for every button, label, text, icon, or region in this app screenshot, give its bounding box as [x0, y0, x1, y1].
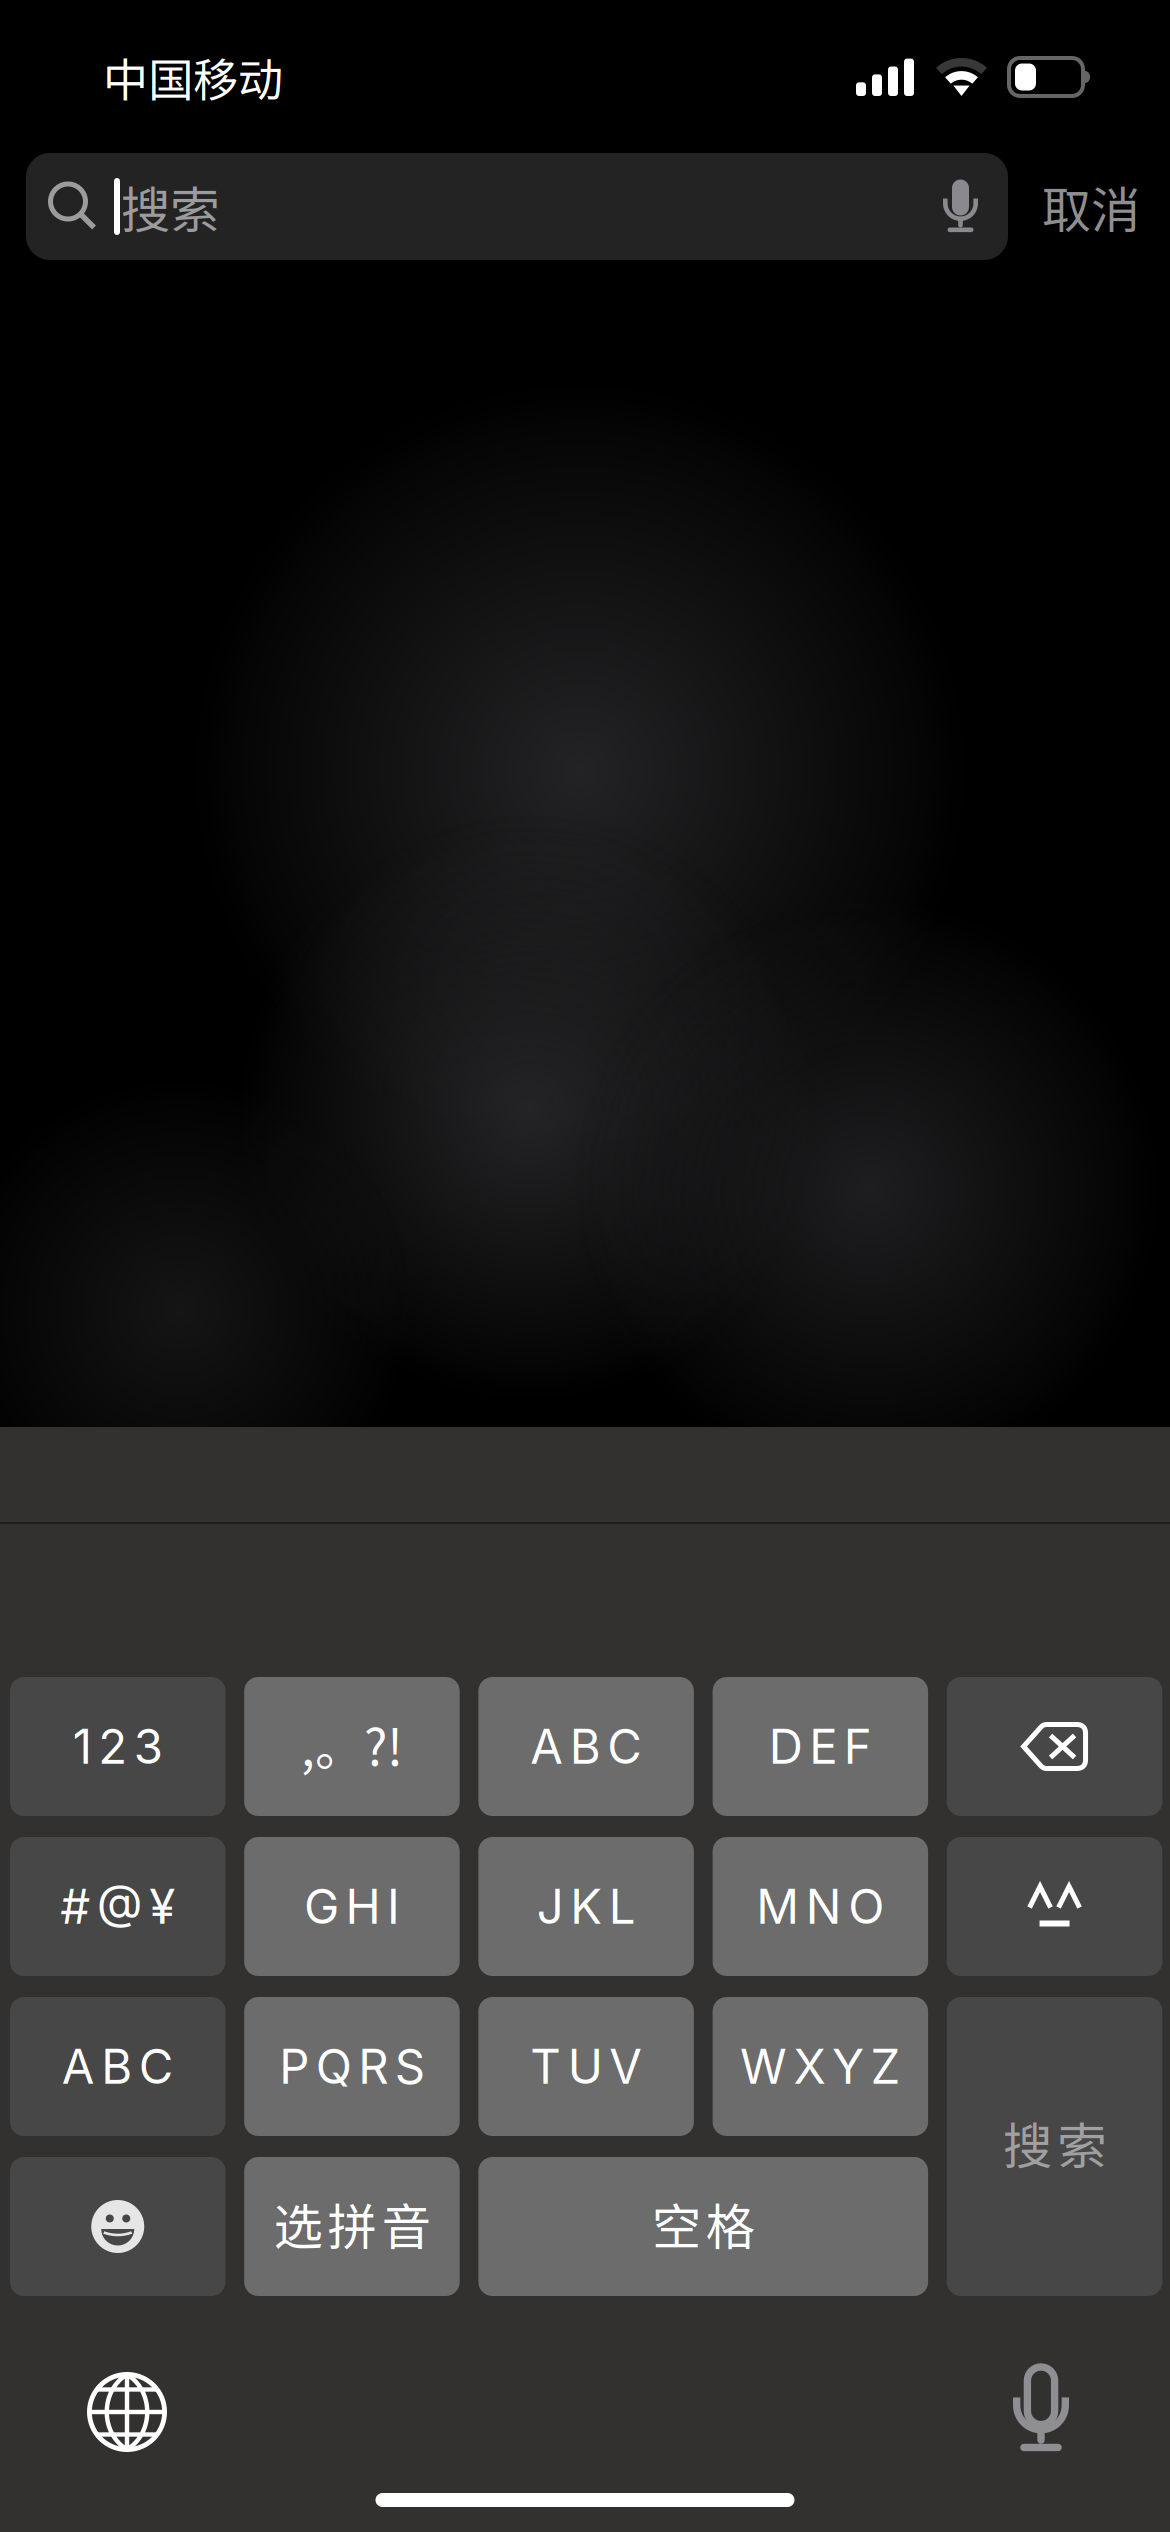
- button[interactable]: Dictation: [1013, 2367, 1069, 2453]
- button[interactable]: MNO: [713, 1837, 928, 1976]
- staticText: GHI: [304, 1878, 400, 1935]
- button[interactable]: 选拼音: [244, 2157, 460, 2296]
- staticText: 搜索: [121, 171, 219, 242]
- staticText: TUV: [530, 2038, 642, 2095]
- staticText: ABC: [530, 1718, 642, 1775]
- staticText: 空格: [652, 2188, 755, 2259]
- button[interactable]: JKL: [478, 1837, 694, 1976]
- staticText: #@¥: [60, 1878, 175, 1935]
- button[interactable]: 123: [10, 1677, 225, 1816]
- button[interactable]: WXYZ: [713, 1997, 928, 2136]
- button[interactable]: PQRS: [244, 1997, 460, 2136]
- staticText: 取消: [1042, 171, 1140, 242]
- button[interactable]: TUV: [478, 1997, 694, 2136]
- staticText: DEF: [769, 1718, 872, 1775]
- staticText: ABC: [62, 2038, 174, 2095]
- staticText: WXYZ: [740, 2038, 901, 2095]
- button[interactable]: 搜索: [26, 153, 1008, 260]
- staticText: 选拼音: [273, 2188, 430, 2259]
- staticText: JKL: [537, 1878, 636, 1935]
- button[interactable]: Emoji: [10, 2157, 225, 2296]
- staticText: ,。?!: [301, 1709, 403, 1780]
- button[interactable]: ABC: [10, 1997, 225, 2136]
- button[interactable]: ABC: [478, 1677, 694, 1816]
- button[interactable]: 搜索: [947, 1997, 1162, 2296]
- staticText: MNO: [756, 1878, 884, 1935]
- staticText: 搜索: [1003, 2107, 1106, 2178]
- button[interactable]: ,。?!: [244, 1677, 460, 1816]
- button[interactable]: #@¥: [10, 1837, 225, 1976]
- button[interactable]: 取消: [1025, 153, 1157, 260]
- staticText: 123: [73, 1718, 163, 1775]
- button[interactable]: Delete: [947, 1677, 1162, 1816]
- button[interactable]: Kaomoji: [947, 1837, 1162, 1976]
- button[interactable]: DEF: [713, 1677, 928, 1816]
- button[interactable]: 空格: [478, 2157, 928, 2296]
- button[interactable]: GHI: [244, 1837, 460, 1976]
- button[interactable]: Next keyboard: [87, 2372, 167, 2452]
- staticText: 中国移动: [103, 44, 283, 110]
- staticText: PQRS: [279, 2038, 425, 2095]
